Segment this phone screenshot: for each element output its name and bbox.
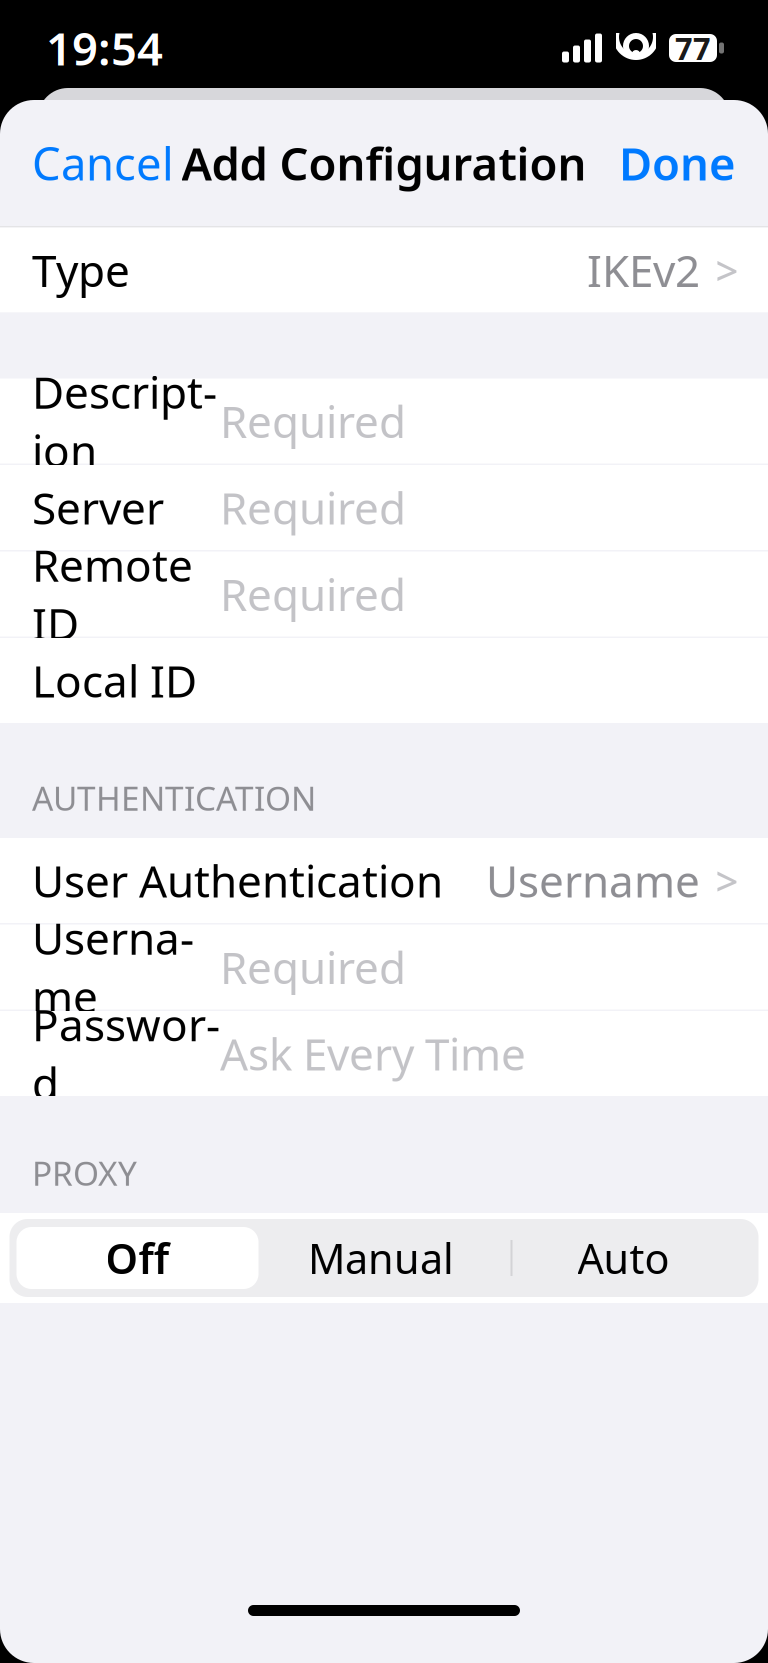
button[interactable]: User Authentication (0, 838, 768, 923)
staticText: Password (32, 995, 220, 1112)
button[interactable]: Server (0, 465, 768, 550)
staticText: Username (486, 851, 700, 910)
button[interactable]: Local ID (0, 638, 768, 723)
staticText: Remote ID (32, 536, 193, 652)
staticText: IKEv2 (587, 241, 700, 299)
staticText: PROXY (32, 1151, 137, 1195)
staticText: Server (32, 478, 164, 537)
staticText: AUTHENTICATION (32, 776, 316, 820)
button[interactable]: Manual (258, 1227, 503, 1289)
staticText: Required (220, 565, 406, 623)
staticText: Required (220, 392, 406, 450)
staticText: > (715, 854, 738, 907)
staticText: Off (105, 1231, 169, 1285)
button[interactable]: Type (0, 227, 768, 312)
staticText: Ask Every Time (220, 1024, 526, 1083)
staticText: 19:54 (46, 18, 163, 78)
button[interactable]: Password (0, 1011, 768, 1096)
staticText: Done (619, 133, 736, 193)
button[interactable]: Cancel (0, 123, 194, 203)
button[interactable]: Username (0, 924, 768, 1009)
button[interactable]: Remote ID (0, 551, 768, 636)
staticText: Local ID (32, 651, 197, 710)
staticText: > (715, 243, 738, 296)
staticText: Cancel (32, 133, 174, 193)
staticText: 77 (675, 28, 711, 68)
button[interactable]: Description (0, 378, 768, 463)
staticText: Required (220, 938, 406, 996)
button[interactable]: Done (599, 123, 768, 203)
button[interactable]: Auto (503, 1227, 743, 1289)
staticText: Type (32, 241, 130, 299)
staticText: Auto (577, 1231, 669, 1285)
staticText: Required (220, 478, 406, 537)
staticText: Username (32, 909, 194, 1025)
button[interactable]: Off (16, 1227, 258, 1289)
staticText: User Authentication (32, 851, 443, 910)
staticText: Description (32, 363, 217, 479)
staticText: Manual (308, 1231, 454, 1285)
staticText: Add Configuration (181, 133, 586, 193)
